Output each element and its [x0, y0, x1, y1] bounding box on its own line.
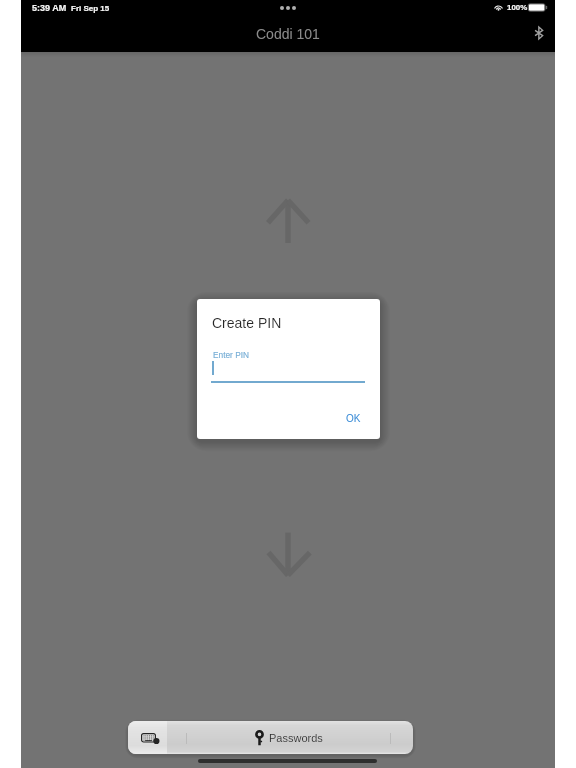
button[interactable]: OK — [340, 410, 367, 427]
staticText: Fri Sep 15 — [71, 4, 110, 13]
staticText: Enter PIN — [213, 350, 249, 359]
staticText: 100% — [507, 3, 528, 12]
staticText: Passwords — [269, 732, 323, 744]
staticText: Coddi 101 — [256, 26, 320, 42]
button[interactable]: Bluetooth — [532, 26, 546, 40]
staticText: Create PIN — [212, 315, 282, 331]
staticText: OK — [346, 413, 361, 424]
staticText: 5:39 AM — [32, 3, 67, 13]
button[interactable]: Passwords — [188, 721, 390, 754]
button[interactable]: Choose keyboard — [128, 721, 167, 754]
